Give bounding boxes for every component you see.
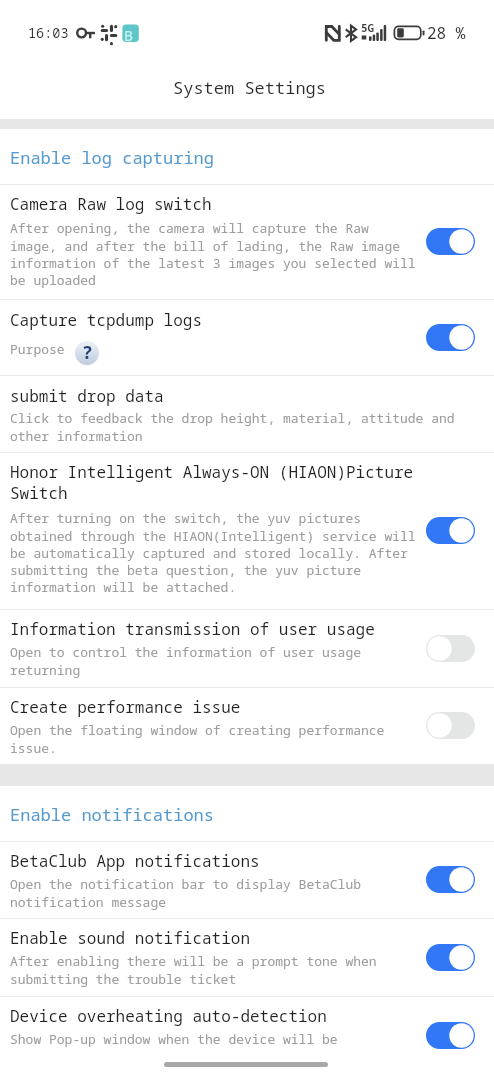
staticText: Create performance issue (10, 696, 241, 718)
button[interactable]: Switch on (426, 944, 475, 971)
staticText: Enable sound notification (10, 927, 251, 949)
staticText: Open the floating window of creating per… (10, 721, 385, 757)
button[interactable]: Switch on (426, 517, 475, 544)
button[interactable]: Honor Intelligent Always-ON (HIAON)Pictu… (0, 452, 494, 609)
button[interactable]: Switch off (426, 635, 475, 662)
staticText: 16:03 (28, 24, 69, 42)
staticText: Enable log capturing (10, 146, 214, 169)
staticText: 5G (361, 20, 375, 35)
button[interactable]: Switch on (426, 324, 475, 351)
button[interactable]: Help (75, 341, 99, 365)
staticText: submit drop data (10, 385, 164, 407)
staticText: BetaClub App notifications (10, 850, 260, 872)
staticText: Show Pop-up window when the device will … (10, 1030, 338, 1048)
staticText: Camera Raw log switch (10, 193, 212, 215)
button[interactable]: Camera Raw log switch (0, 184, 494, 299)
button[interactable]: submit drop data (0, 375, 494, 452)
staticText: Capture tcpdump logs (10, 309, 203, 331)
staticText: Information transmission of user usage (10, 618, 375, 640)
button[interactable]: Switch on (426, 228, 475, 255)
button[interactable]: BetaClub App notifications (0, 841, 494, 918)
button[interactable]: Enable sound notification (0, 918, 494, 996)
staticText: 28 % (427, 22, 466, 44)
staticText: ? (82, 341, 93, 364)
staticText: After opening, the camera will capture t… (10, 219, 416, 289)
staticText: Open the notification bar to display Bet… (10, 875, 361, 911)
staticText: Device overheating auto-detection (10, 1005, 327, 1027)
staticText: Click to feedback the drop height, mater… (10, 409, 455, 445)
staticText: Open to control the information of user … (10, 643, 361, 679)
button[interactable]: Switch on (426, 866, 475, 893)
button[interactable]: Information transmission of user usage (0, 609, 494, 687)
staticText: After turning on the switch, the yuv pic… (10, 509, 416, 596)
button[interactable]: Create performance issue (0, 687, 494, 764)
button[interactable]: Switch on (426, 1022, 475, 1049)
button[interactable]: Capture tcpdump logs (0, 299, 494, 375)
staticText: Honor Intelligent Always-ON (HIAON)Pictu… (10, 461, 414, 504)
staticText: After enabling there will be a prompt to… (10, 952, 377, 988)
staticText: Purpose (10, 340, 65, 358)
staticText: B (124, 25, 134, 45)
staticText: Enable notifications (10, 803, 214, 826)
button[interactable]: Switch off (426, 712, 475, 739)
staticText: System Settings (173, 76, 326, 99)
button[interactable]: Device overheating auto-detection (0, 996, 494, 1074)
